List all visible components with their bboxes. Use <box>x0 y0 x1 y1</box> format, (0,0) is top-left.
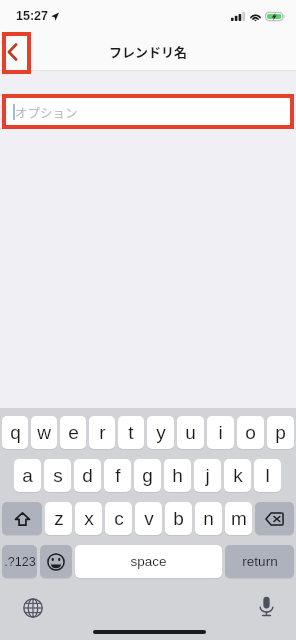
button[interactable]: x <box>75 502 102 535</box>
staticText: t <box>128 422 134 443</box>
staticText: c <box>114 508 124 529</box>
button[interactable]: f <box>104 459 131 492</box>
button[interactable]: Dictation <box>253 593 279 619</box>
button[interactable]: e <box>60 416 86 449</box>
staticText: z <box>54 508 64 529</box>
button[interactable]: b <box>165 502 192 535</box>
button[interactable]: z <box>45 502 72 535</box>
button[interactable]: r <box>89 416 115 449</box>
staticText: i <box>218 422 223 443</box>
button[interactable]: m <box>225 502 252 535</box>
staticText: .?123 <box>4 555 36 569</box>
button[interactable]: .?123 <box>2 545 37 578</box>
button[interactable]: q <box>2 416 28 449</box>
staticText: return <box>242 554 278 569</box>
button[interactable]: p <box>267 416 294 449</box>
button[interactable]: i <box>207 416 234 449</box>
staticText: b <box>173 508 184 529</box>
button[interactable]: space <box>75 545 222 578</box>
staticText: u <box>185 422 196 443</box>
button[interactable]: t <box>118 416 144 449</box>
button[interactable]: g <box>134 459 161 492</box>
staticText: g <box>142 465 153 486</box>
button[interactable]: k <box>224 459 251 492</box>
button[interactable]: Backspace <box>255 502 294 535</box>
button[interactable]: Change keyboard <box>20 595 46 621</box>
staticText: y <box>156 422 166 443</box>
staticText: m <box>231 508 247 529</box>
staticText: 15:27 <box>16 9 48 23</box>
staticText: w <box>37 422 51 443</box>
staticText: k <box>233 465 243 486</box>
button[interactable]: w <box>31 416 57 449</box>
staticText: s <box>53 465 63 486</box>
staticText: v <box>144 508 154 529</box>
staticText: h <box>172 465 183 486</box>
button[interactable]: v <box>135 502 162 535</box>
button[interactable]: c <box>105 502 132 535</box>
button[interactable]: a <box>14 459 41 492</box>
button[interactable]: return <box>225 545 294 578</box>
button[interactable]: Shift <box>2 502 42 535</box>
button[interactable]: Back <box>2 32 31 74</box>
staticText: o <box>245 422 256 443</box>
button[interactable]: d <box>74 459 101 492</box>
staticText: f <box>115 465 121 486</box>
button[interactable]: j <box>194 459 221 492</box>
button[interactable]: y <box>147 416 174 449</box>
button[interactable]: s <box>44 459 71 492</box>
staticText: l <box>265 465 270 486</box>
button[interactable]: h <box>164 459 191 492</box>
staticText: p <box>275 422 286 443</box>
staticText: x <box>84 508 94 529</box>
staticText: q <box>10 422 21 443</box>
staticText: オプション <box>15 103 78 121</box>
staticText: e <box>68 422 79 443</box>
staticText: r <box>99 422 106 443</box>
staticText: j <box>205 465 210 486</box>
button[interactable]: o <box>237 416 264 449</box>
staticText: a <box>22 465 33 486</box>
staticText: space <box>130 554 167 569</box>
button[interactable]: l <box>254 459 281 492</box>
staticText: n <box>203 508 214 529</box>
button[interactable]: u <box>177 416 204 449</box>
button[interactable]: n <box>195 502 222 535</box>
staticText: d <box>82 465 93 486</box>
staticText: フレンドリ名 <box>109 42 188 61</box>
button[interactable]: オプション <box>2 94 294 129</box>
button[interactable]: Emoji <box>40 545 72 578</box>
